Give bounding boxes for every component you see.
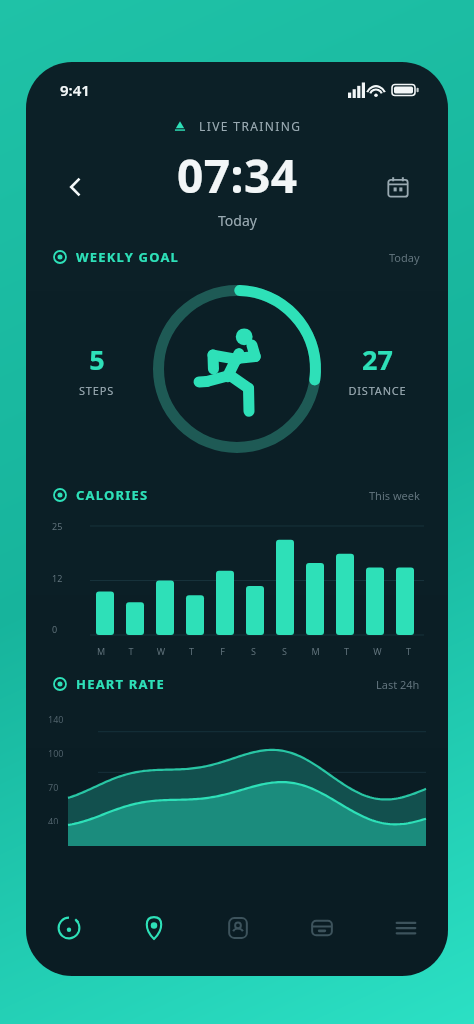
button[interactable]: Location [111,900,196,956]
staticText: 07:34 [177,144,298,207]
staticText: 5 [89,341,105,378]
button[interactable]: 27 [327,341,428,398]
staticText: 9:41 [60,80,90,100]
staticText: S [269,645,300,657]
staticText: T [331,645,362,657]
staticText: 40 [48,815,59,824]
staticText: DISTANCE [348,383,407,398]
staticText: 12 [52,572,63,584]
button[interactable]: Today [389,250,420,265]
staticText: W [362,645,393,657]
button[interactable]: Wallet [280,900,364,956]
staticText: 70 [48,781,59,793]
button[interactable]: 5 [46,341,147,398]
staticText: M [86,645,116,657]
button[interactable]: Activity [26,900,111,956]
staticText: F [207,645,238,657]
staticText: S [238,645,269,657]
staticText: 100 [48,747,64,759]
staticText: 27 [362,341,393,378]
staticText: W [146,645,176,657]
staticText: T [116,645,146,657]
staticText: T [176,645,207,657]
staticText: CALORIES [76,486,149,504]
button[interactable]: This week [369,488,420,503]
staticText: 0 [52,623,58,635]
staticText: 140 [48,713,64,725]
staticText: LIVE TRAINING [199,118,302,134]
staticText: HEART RATE [76,675,166,693]
staticText: 25 [52,520,63,532]
staticText: Today [218,211,257,230]
staticText: WEEKLY GOAL [76,248,180,266]
staticText: STEPS [79,383,114,398]
button[interactable]: Menu [364,900,448,956]
staticText: T [393,645,424,657]
button[interactable]: Profile [196,900,280,956]
button[interactable]: Calendar [376,165,420,209]
staticText: M [300,645,331,657]
button[interactable]: Back [54,165,98,209]
button[interactable]: Last 24h [376,677,420,692]
